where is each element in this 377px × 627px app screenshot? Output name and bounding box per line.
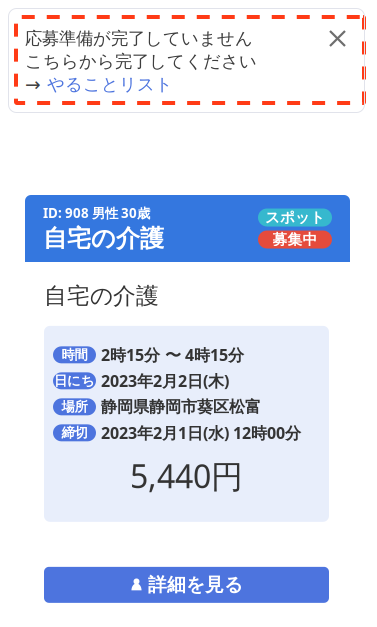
staticText: やることリスト xyxy=(47,74,173,95)
staticText: 自宅の介護 xyxy=(43,224,164,253)
button[interactable]: 閉じる xyxy=(330,27,345,46)
staticText: 時間 xyxy=(61,347,87,363)
staticText: こちらから完了してください xyxy=(25,51,257,72)
staticText: 2時15分 〜 4時15分 xyxy=(101,344,244,365)
staticText: 自宅の介護 xyxy=(44,282,159,310)
staticText: スポット xyxy=(265,208,325,226)
staticText: 詳細を見る xyxy=(148,573,243,596)
staticText: ID: 908 男性 30歳 xyxy=(43,204,150,222)
staticText: 2023年2月1日(水) 12時00分 xyxy=(101,422,301,443)
staticText: 締切 xyxy=(61,425,87,441)
staticText: 日にち xyxy=(54,373,95,389)
staticText: 5,440円 xyxy=(130,455,243,497)
button[interactable]: やることリスト xyxy=(47,74,173,95)
staticText: 場所 xyxy=(61,399,87,415)
staticText: 応募準備が完了していません xyxy=(25,28,253,49)
staticText: → xyxy=(25,74,47,95)
staticText: 募集中 xyxy=(272,230,317,248)
button[interactable]: 詳細を見る xyxy=(44,567,329,603)
staticText: 静岡県静岡市葵区松富 xyxy=(101,397,261,417)
staticText: 2023年2月2日(木) xyxy=(101,370,229,391)
